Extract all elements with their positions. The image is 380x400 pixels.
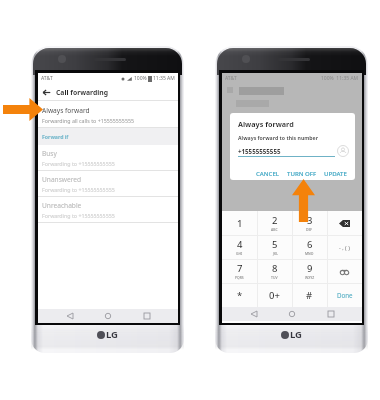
staticText: +15555555555	[238, 147, 281, 155]
button[interactable]: 9	[292, 259, 327, 283]
staticText: 9	[307, 262, 313, 275]
staticText: Always forward to this number	[238, 134, 319, 141]
staticText: Unreachable	[42, 201, 82, 210]
button[interactable]: Back	[38, 84, 178, 100]
button[interactable]: Voicemail	[327, 259, 362, 283]
staticText: Forwarding to +15555555555	[42, 160, 115, 167]
button[interactable]: TURN OFF	[285, 169, 319, 177]
button[interactable]: Back	[42, 88, 51, 97]
button[interactable]: 3	[292, 211, 327, 235]
staticText: TUV	[271, 275, 278, 280]
staticText: 7	[237, 262, 243, 275]
button[interactable]: Busy	[38, 145, 178, 170]
button[interactable]: Unreachable	[38, 197, 178, 222]
staticText: ABC	[271, 227, 278, 232]
staticText: GHI	[236, 251, 243, 256]
button[interactable]: Back	[247, 307, 261, 321]
staticText: Always forward	[238, 119, 294, 129]
staticText: Forwarding all calls to +15555555555	[42, 117, 134, 124]
staticText: 100% 11:35 AM	[321, 75, 359, 82]
button[interactable]: 5	[257, 235, 292, 259]
staticText: 5	[272, 238, 278, 251]
button[interactable]: Always forward	[38, 102, 178, 127]
staticText: LG	[106, 328, 118, 341]
button[interactable]: 7	[222, 259, 257, 283]
staticText: MNO	[305, 251, 314, 256]
button[interactable]: 2	[257, 211, 292, 235]
button[interactable]: Contacts	[337, 145, 349, 157]
staticText: AT&T	[41, 75, 53, 82]
button[interactable]: Done	[327, 283, 362, 307]
staticText: 8	[272, 262, 278, 275]
staticText: 1	[237, 217, 243, 230]
staticText: PQRS	[235, 275, 244, 280]
button[interactable]: Backspace	[327, 211, 362, 235]
button[interactable]: Unanswered	[38, 171, 178, 196]
staticText: 100%	[134, 75, 147, 82]
button[interactable]: Insert pause or wait	[327, 235, 362, 259]
staticText: WXYZ	[305, 275, 315, 280]
staticText: Forwarding to +15555555555	[42, 186, 115, 193]
staticText: - , ( )	[339, 244, 350, 251]
staticText: Unanswered	[42, 175, 82, 184]
staticText: Done	[337, 291, 353, 299]
button[interactable]: 1	[222, 211, 257, 235]
button[interactable]: Back	[63, 309, 77, 323]
staticText: LG	[290, 328, 302, 341]
button[interactable]: Home	[101, 309, 115, 323]
button[interactable]: Recents	[140, 309, 154, 323]
staticText: AT&T	[225, 75, 237, 82]
staticText: Busy	[42, 149, 57, 158]
button[interactable]: 0+	[257, 283, 292, 307]
staticText: *	[237, 289, 243, 302]
staticText: JKL	[273, 251, 278, 256]
button[interactable]: Recents	[324, 307, 338, 321]
staticText: Forward if	[42, 133, 69, 140]
staticText: 2	[272, 214, 278, 227]
button[interactable]: 6	[292, 235, 327, 259]
button[interactable]: 4	[222, 235, 257, 259]
staticText: Call forwarding	[56, 88, 109, 97]
staticText: 11:35 AM	[153, 75, 175, 82]
staticText: DEF	[306, 227, 313, 232]
staticText: Always forward	[42, 106, 90, 115]
staticText: 6	[307, 238, 313, 251]
staticText: 0+	[269, 289, 280, 302]
button[interactable]: *	[222, 283, 257, 307]
staticText: 3	[307, 214, 313, 227]
staticText: #	[306, 289, 313, 302]
button[interactable]: UPDATE	[322, 169, 349, 177]
button[interactable]: #	[292, 283, 327, 307]
staticText: 4	[237, 238, 243, 251]
staticText: Forwarding to +15555555555	[42, 212, 115, 219]
button[interactable]: 8	[257, 259, 292, 283]
button[interactable]: CANCEL	[254, 169, 282, 177]
button[interactable]: Home	[285, 307, 299, 321]
